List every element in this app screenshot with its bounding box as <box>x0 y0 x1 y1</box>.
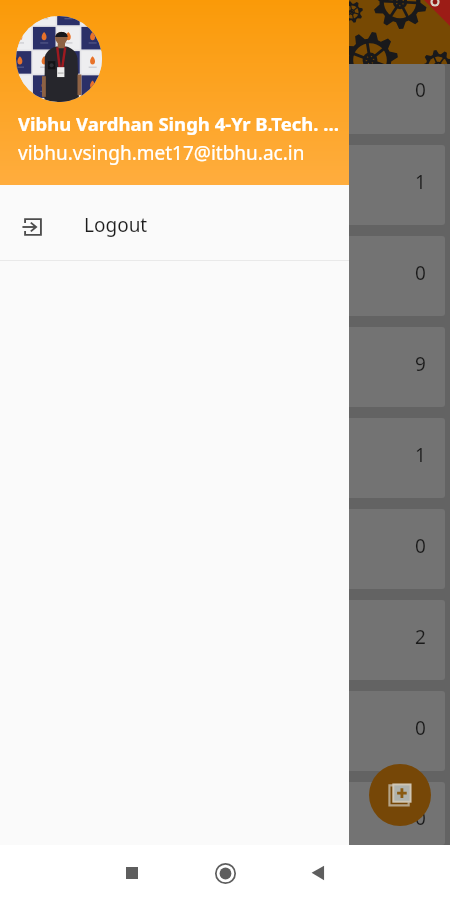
button[interactable]: Home <box>205 853 245 893</box>
button[interactable]: 0 <box>5 509 445 589</box>
staticText: 0 <box>415 260 426 286</box>
button[interactable]: 0 <box>5 691 445 771</box>
staticText: 0 <box>415 533 426 559</box>
staticText: 0 <box>415 77 426 103</box>
staticText: 2 <box>415 624 426 650</box>
staticText: Vibhu Vardhan Singh 4-Yr B.Tech. … <box>18 111 340 136</box>
staticText: 1 <box>415 442 426 468</box>
button[interactable]: 0 <box>5 64 445 134</box>
button[interactable]: 9 <box>5 327 445 407</box>
staticText: 0 <box>415 805 426 831</box>
button[interactable]: Back <box>298 853 338 893</box>
button[interactable]: 1 <box>5 418 445 498</box>
staticText: 1 <box>415 169 426 195</box>
staticText: Logout <box>84 212 148 238</box>
button[interactable]: 0 <box>5 782 445 845</box>
staticText: 0 <box>415 715 426 741</box>
staticText: 9 <box>415 351 426 377</box>
button[interactable]: 1 <box>5 145 445 225</box>
button[interactable]: Logout <box>0 185 349 260</box>
button[interactable]: 2 <box>5 600 445 680</box>
staticText: vibhu.vsingh.met17@itbhu.ac.in <box>18 140 305 166</box>
button[interactable]: Recents <box>112 853 152 893</box>
button[interactable]: Add item <box>369 764 431 826</box>
button[interactable]: 0 <box>5 236 445 316</box>
